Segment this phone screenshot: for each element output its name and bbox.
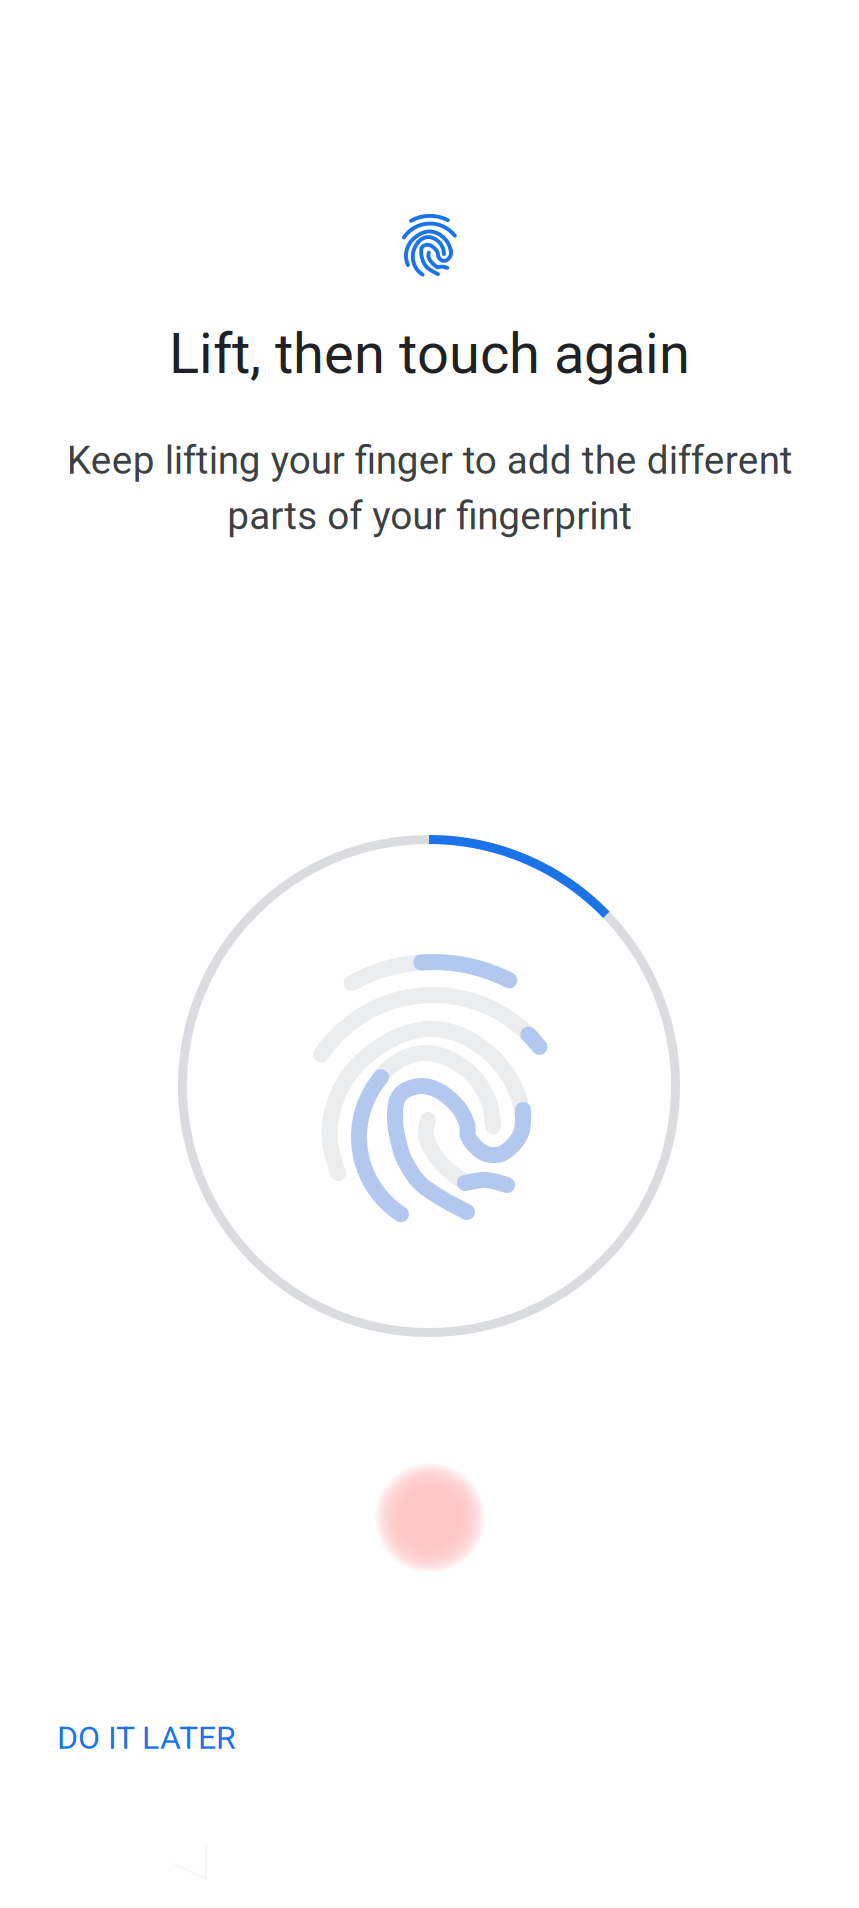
staticText: Keep lifting your finger to add the diff… — [66, 438, 792, 539]
staticText: DO IT LATER — [57, 1719, 236, 1756]
button[interactable]: DO IT LATER — [33, 1695, 260, 1780]
staticText: Lift, then touch again — [169, 321, 690, 387]
